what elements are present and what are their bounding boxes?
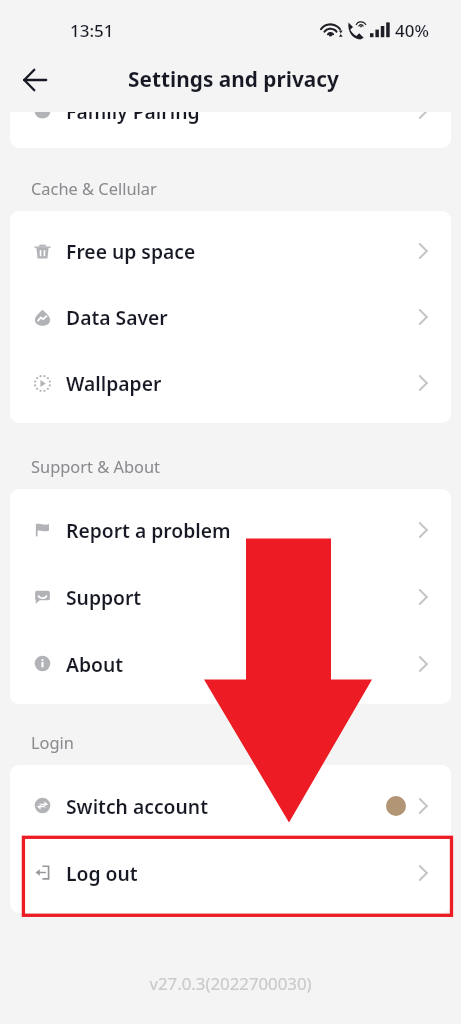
staticText: v27.0.3(2022700030) [0, 972, 461, 995]
staticText: Family Pairing [66, 98, 200, 124]
button[interactable]: Data Saver [10, 284, 451, 350]
button[interactable]: Back [10, 54, 60, 106]
staticText: 40% [395, 19, 429, 42]
button[interactable]: About [10, 630, 451, 697]
staticText: Support & About [31, 455, 160, 477]
staticText: Login [31, 731, 74, 753]
button[interactable]: Family Pairing [10, 77, 451, 148]
staticText: 13:51 [70, 19, 114, 42]
button[interactable]: Log out [10, 839, 451, 906]
staticText: Free up space [66, 238, 196, 264]
staticText: Cache & Cellular [31, 177, 157, 199]
staticText: Data Saver [66, 304, 168, 330]
staticText: Wallpaper [66, 370, 162, 396]
button[interactable]: Free up space [10, 218, 451, 284]
button[interactable]: Support [10, 563, 451, 630]
staticText: Support [66, 584, 142, 610]
staticText: About [66, 651, 124, 677]
staticText: Report a problem [66, 517, 231, 543]
button[interactable]: Report a problem [10, 496, 451, 563]
staticText: Settings and privacy [3, 65, 461, 93]
staticText: Switch account [66, 793, 208, 819]
button[interactable]: Wallpaper [10, 350, 451, 416]
staticText: Log out [66, 860, 138, 886]
button[interactable]: Switch account [10, 772, 451, 839]
